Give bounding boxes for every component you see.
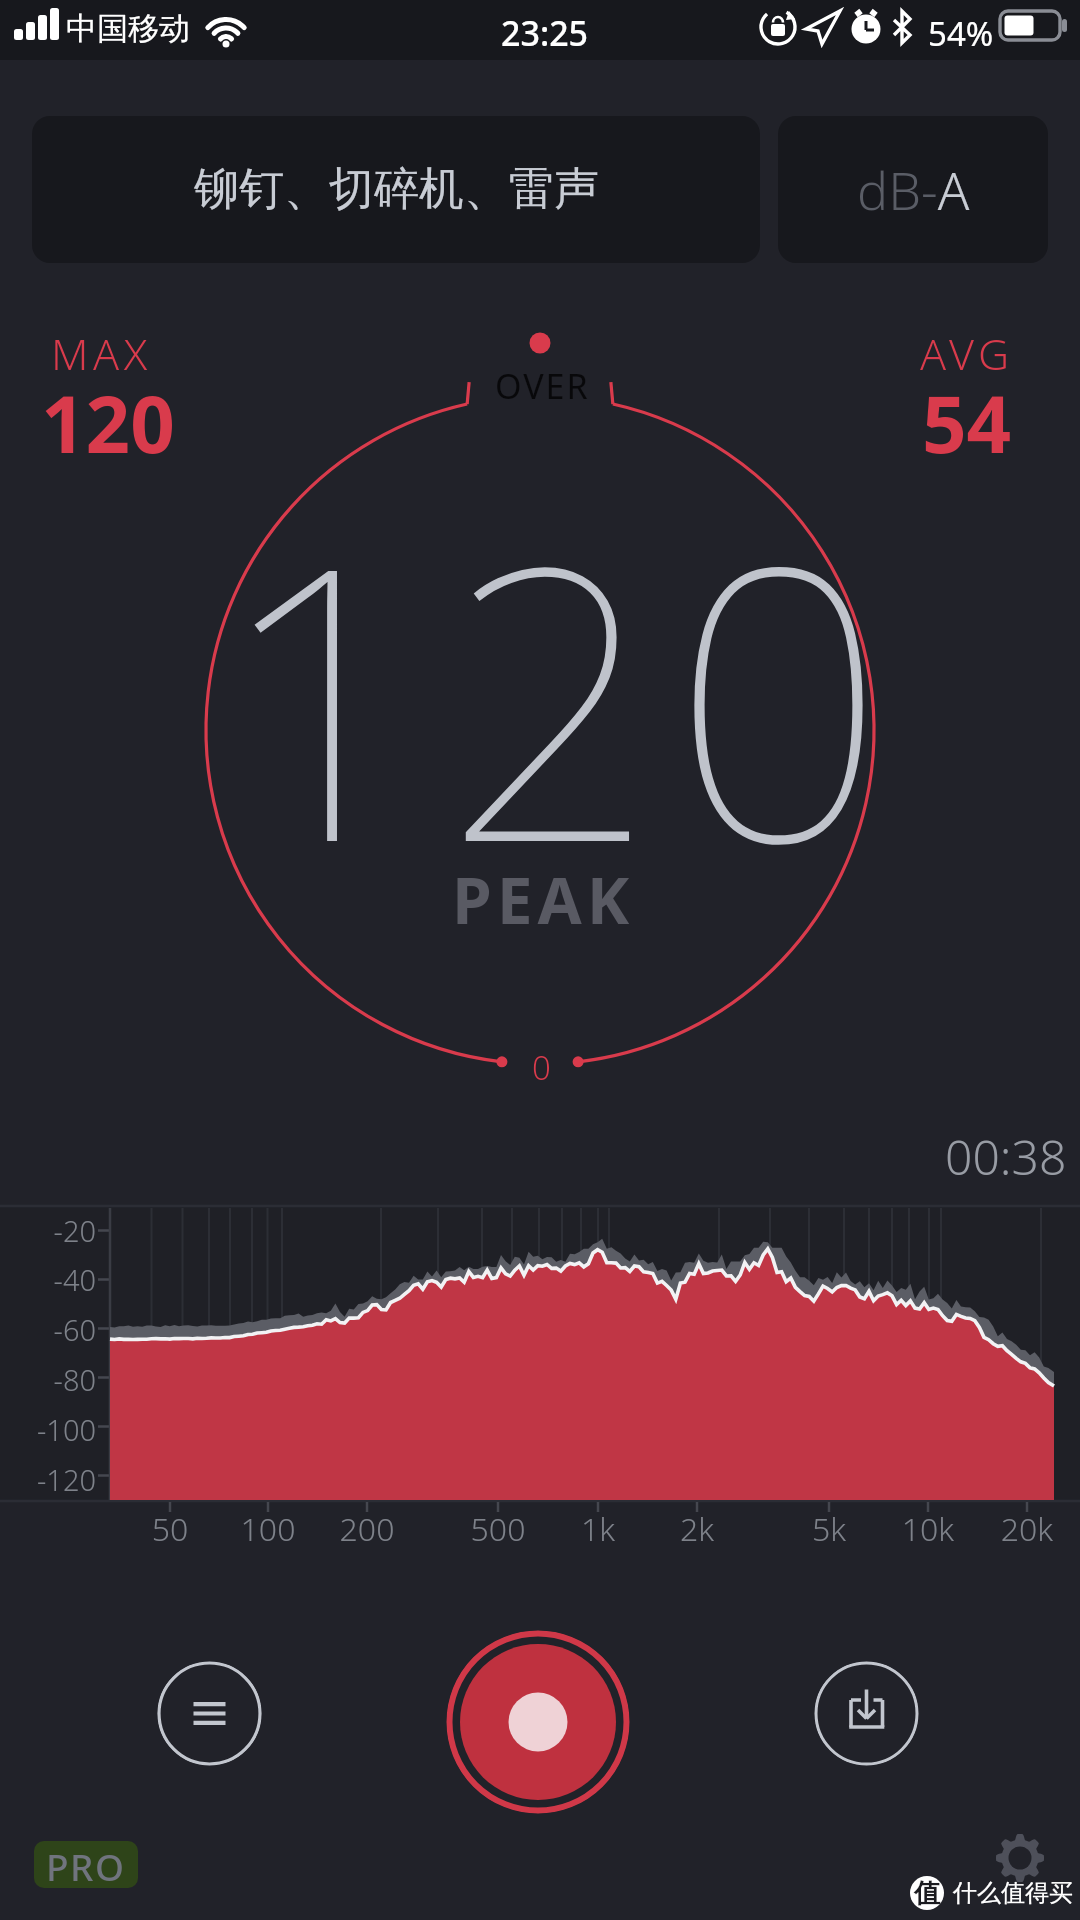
staticText: -100: [0, 1410, 96, 1449]
staticText: 2k: [627, 1507, 767, 1551]
staticText: -60: [0, 1310, 96, 1349]
staticText: 20k: [957, 1507, 1080, 1551]
staticText: AVG: [920, 324, 1014, 383]
staticText: 什么值得买: [953, 1878, 1073, 1908]
button[interactable]: dB-A: [778, 116, 1048, 263]
staticText: PEAK: [452, 856, 635, 943]
button[interactable]: Menu: [157, 1661, 262, 1766]
button[interactable]: Settings: [988, 1826, 1052, 1890]
staticText: 值: [914, 1877, 940, 1910]
staticText: 10k: [858, 1507, 998, 1551]
staticText: 0: [532, 1045, 551, 1090]
staticText: dB-A: [857, 154, 970, 225]
staticText: 200: [297, 1507, 437, 1551]
staticText: 54: [922, 370, 1012, 476]
staticText: 100: [198, 1507, 338, 1551]
staticText: PRO: [46, 1841, 126, 1888]
staticText: 54%: [928, 11, 994, 56]
button[interactable]: Record: [446, 1630, 630, 1814]
staticText: 500: [428, 1507, 568, 1551]
staticText: 00:38: [945, 1124, 1067, 1189]
button[interactable]: PRO: [34, 1841, 138, 1888]
staticText: OVER: [495, 363, 590, 409]
staticText: -120: [0, 1460, 96, 1499]
staticText: 120: [216, 437, 899, 952]
staticText: -80: [0, 1360, 96, 1399]
staticText: -40: [0, 1260, 96, 1299]
staticText: 中国移动: [66, 9, 190, 48]
staticText: MAX: [51, 324, 152, 383]
button[interactable]: 铆钉、切碎机、雷声: [32, 116, 760, 263]
staticText: 1k: [528, 1507, 668, 1551]
staticText: 120: [41, 370, 175, 476]
button[interactable]: Save: [814, 1661, 919, 1766]
staticText: 50: [100, 1507, 240, 1551]
staticText: 铆钉、切碎机、雷声: [194, 161, 599, 218]
staticText: 23:25: [501, 10, 589, 56]
staticText: 5k: [759, 1507, 899, 1551]
staticText: -20: [0, 1211, 96, 1250]
